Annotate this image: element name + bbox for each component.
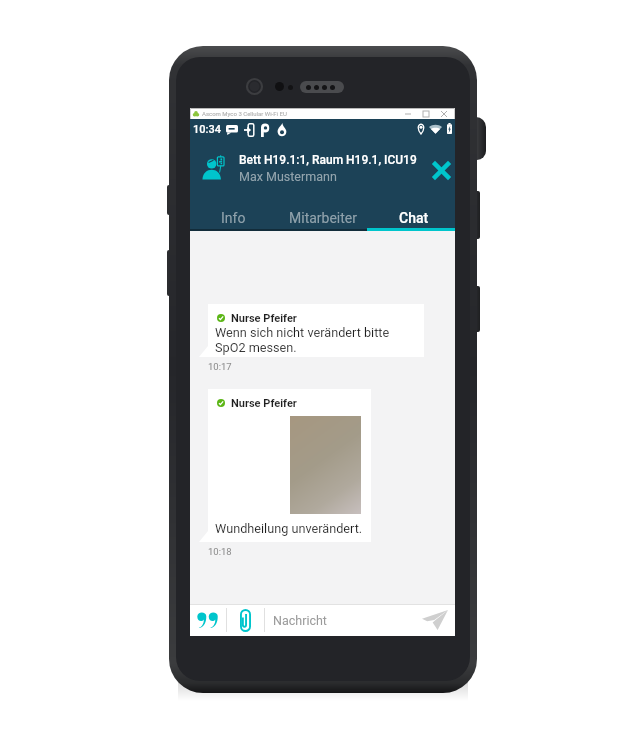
staticText: Wundheilung unverändert. [215,521,363,536]
button[interactable]: Nurse Pfeifer [208,304,424,357]
button[interactable]: min [399,108,417,119]
staticText: Bett H19.1:1, Raum H19.1, ICU19 [239,153,417,167]
staticText: Info [221,210,246,226]
button[interactable]: Mitarbeiter [279,203,367,232]
staticText: Mitarbeiter [289,210,358,226]
button[interactable]: Nurse Pfeifer [208,389,371,542]
staticText: Nachricht [273,613,327,628]
button[interactable]: Quick replies [190,604,226,636]
staticText: Nurse Pfeifer [231,397,297,410]
staticText: 10:34 [193,123,221,136]
button[interactable]: close [435,108,453,119]
button[interactable]: Attach file [227,604,263,636]
staticText: 10:17 [208,361,232,372]
staticText: Max Mustermann [239,169,337,184]
button[interactable]: max [417,108,435,119]
button[interactable]: Nachricht [265,604,415,636]
staticText: Wenn sich nicht verändert bitte SpO2 mes… [215,325,390,355]
staticText: Chat [399,210,429,226]
staticText: Ascom Myco 3 Cellular Wi-Fi EU [202,110,287,117]
button[interactable]: Send [415,604,455,636]
button[interactable]: Info [190,203,279,232]
staticText: 10:18 [208,546,232,557]
button[interactable]: Chat [367,203,455,232]
staticText: Nurse Pfeifer [231,312,297,325]
button[interactable]: Close [426,155,456,185]
